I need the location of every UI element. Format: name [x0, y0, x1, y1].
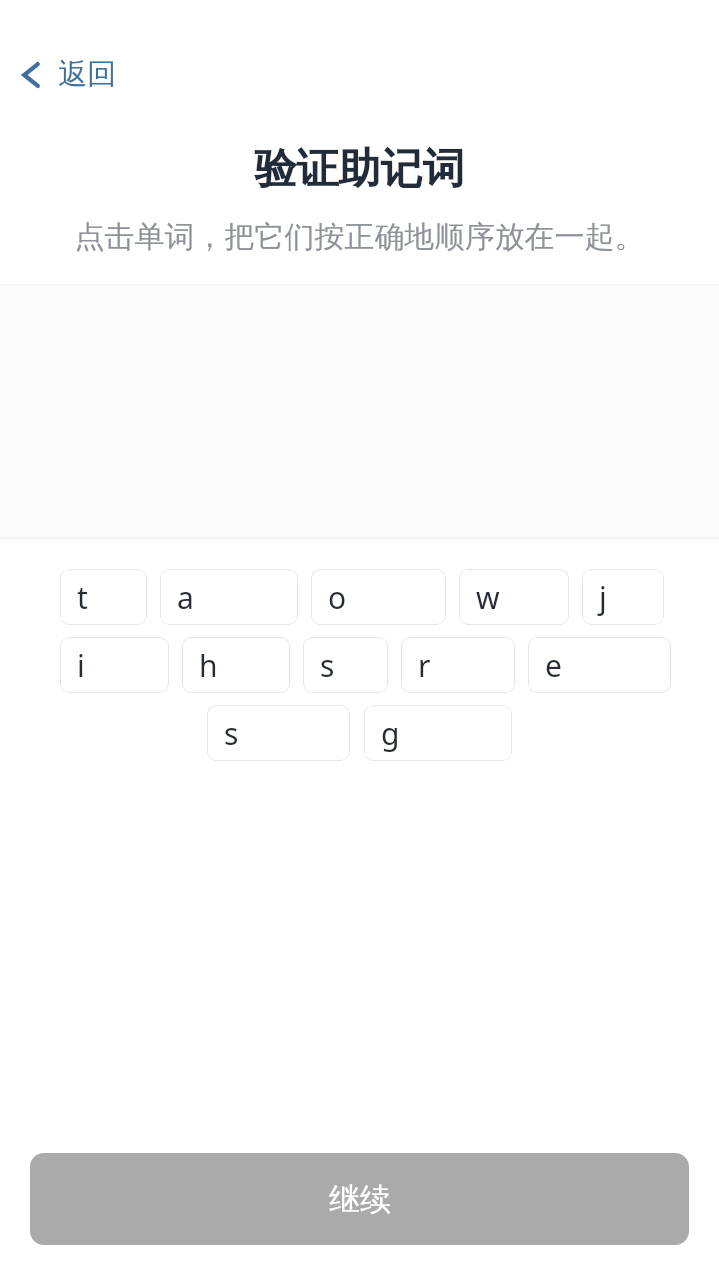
button[interactable]: e [528, 637, 671, 693]
button[interactable]: s [303, 637, 388, 693]
button[interactable]: a [160, 569, 298, 625]
button[interactable]: 继续 [30, 1153, 689, 1245]
staticText: 继续 [329, 1180, 391, 1219]
staticText: w [476, 577, 500, 618]
staticText: g [381, 713, 400, 754]
button[interactable]: Back [0, 52, 134, 97]
staticText: s [320, 645, 335, 686]
staticText: s [224, 713, 239, 754]
button[interactable]: j [582, 569, 664, 625]
staticText: o [328, 577, 347, 618]
staticText: r [418, 645, 431, 686]
other: Back [14, 58, 48, 92]
staticText: 点击单词，把它们按正确地顺序放在一起。 [38, 218, 681, 256]
button[interactable]: r [401, 637, 515, 693]
button[interactable]: s [207, 705, 350, 761]
button[interactable]: w [459, 569, 569, 625]
staticText: j [599, 577, 607, 618]
staticText: i [77, 645, 85, 686]
staticText: 验证助记词 [0, 143, 719, 196]
button[interactable]: i [60, 637, 169, 693]
staticText: a [177, 577, 194, 618]
button[interactable]: t [60, 569, 147, 625]
staticText: e [545, 645, 562, 686]
button[interactable]: h [182, 637, 290, 693]
staticText: t [77, 577, 88, 618]
button[interactable]: g [364, 705, 512, 761]
button[interactable]: o [311, 569, 446, 625]
staticText: 返回 [58, 56, 116, 93]
staticText: h [199, 645, 218, 686]
